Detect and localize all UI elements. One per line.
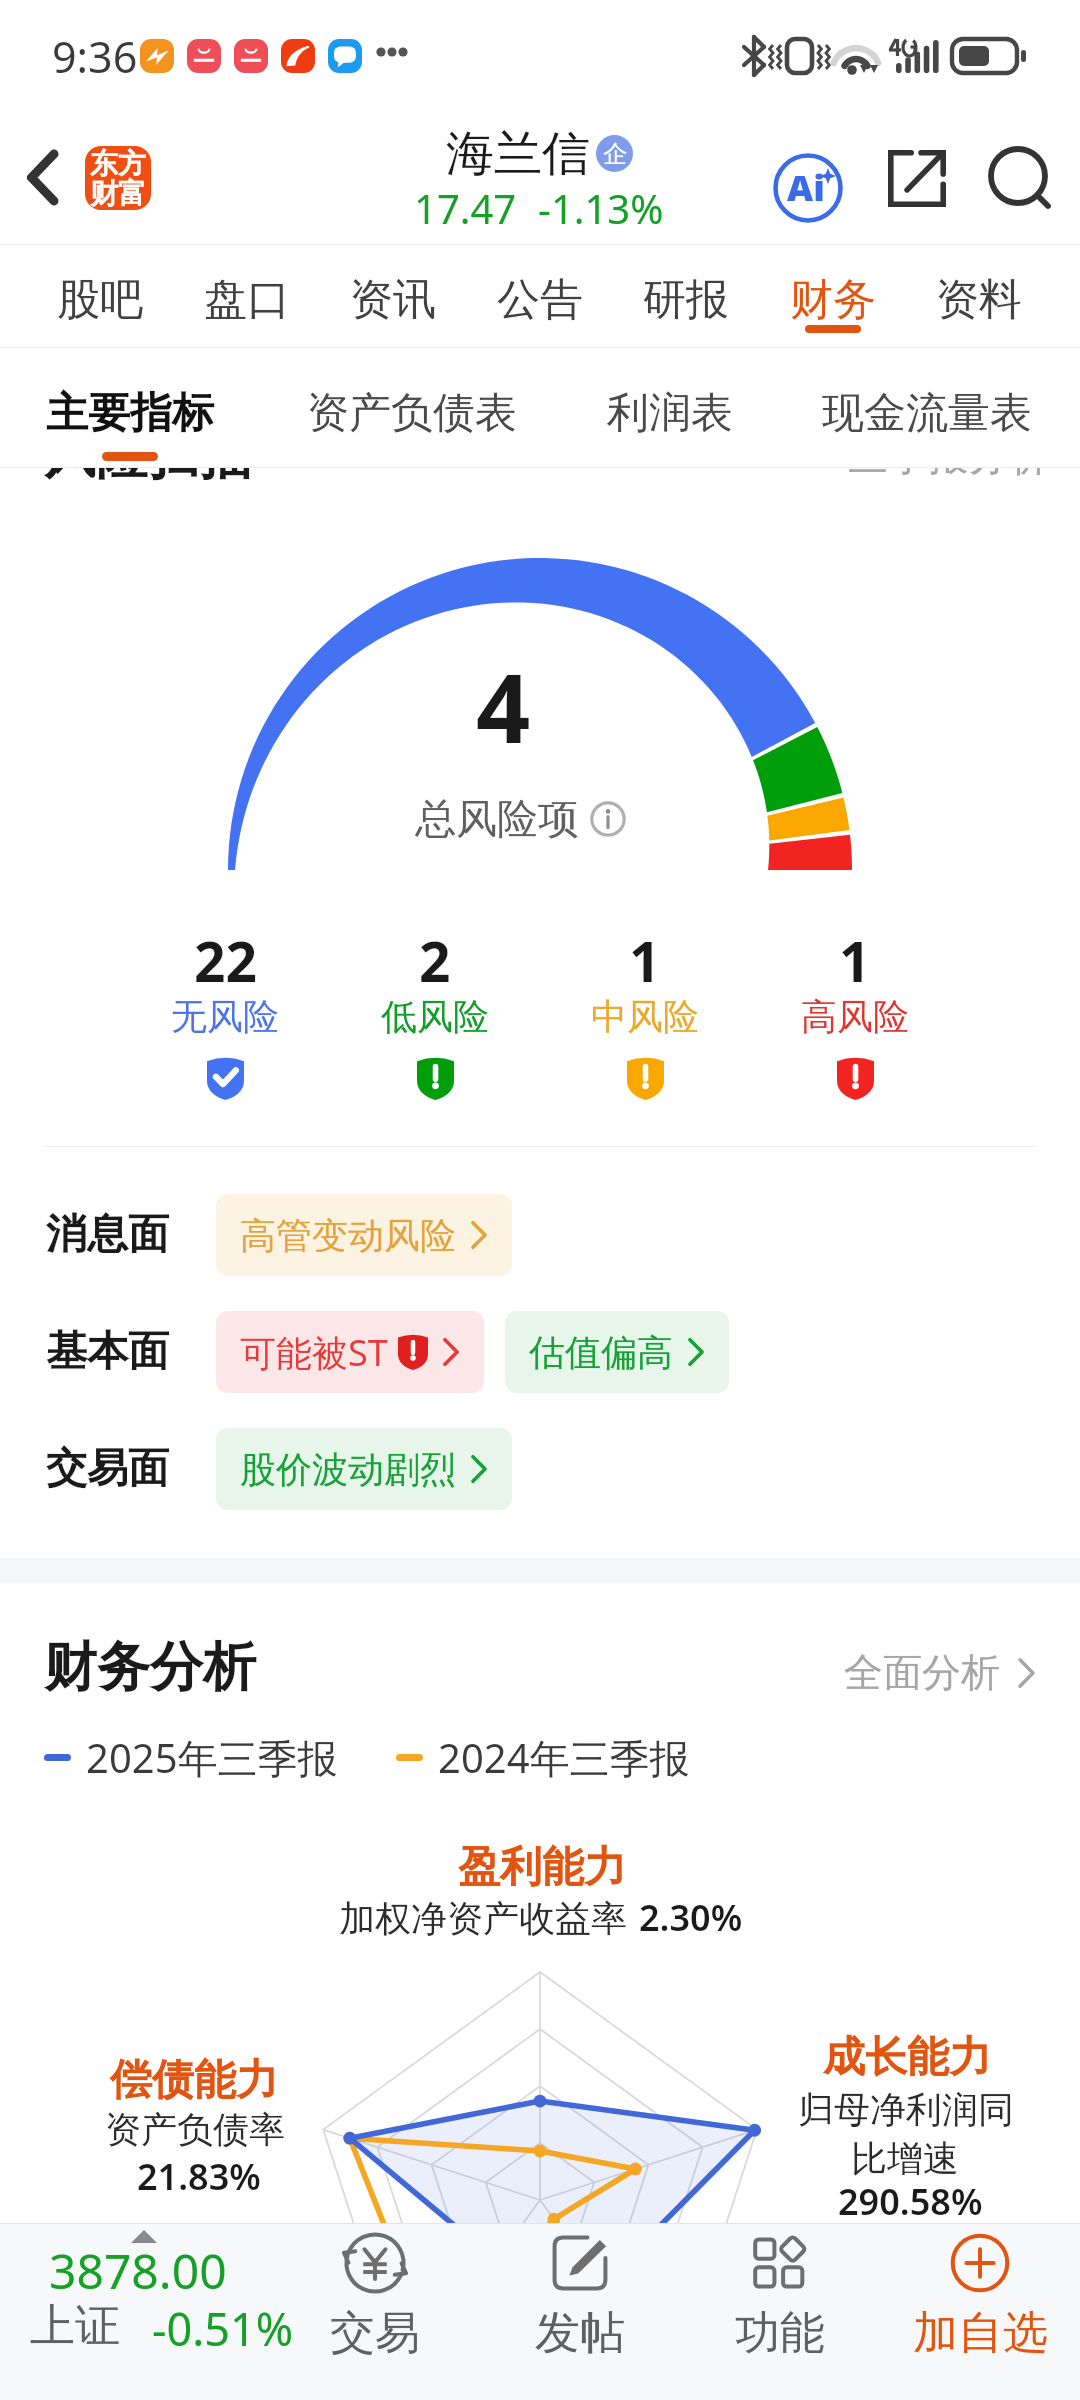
button[interactable]: 东方 财富 <box>85 146 151 210</box>
staticText: 三季报分析 <box>848 468 1048 481</box>
staticText: 基本面 <box>46 1326 169 1378</box>
button[interactable]: 资产负债表 <box>252 348 572 468</box>
staticText: 资产负债率 <box>105 2107 285 2152</box>
button[interactable]: 估值偏高 <box>505 1311 729 1393</box>
button[interactable]: 可能被ST <box>216 1311 484 1393</box>
staticText: 资讯 <box>350 273 436 327</box>
staticText: 归母净利润同 <box>798 2087 1014 2132</box>
button[interactable]: 股价波动剧烈 <box>216 1428 512 1510</box>
staticText: 估值偏高 <box>529 1330 673 1375</box>
staticText: 交易面 <box>46 1443 169 1495</box>
staticText: 2025年三季报 <box>86 1730 338 1785</box>
staticText: 企 <box>603 139 627 169</box>
staticText: 中风险 <box>591 994 699 1039</box>
staticText: 可能被ST <box>240 1328 388 1377</box>
staticText: 股价波动剧烈 <box>240 1447 456 1492</box>
staticText: 低风险 <box>381 994 489 1039</box>
staticText: 高管变动风险 <box>240 1213 456 1258</box>
staticText: 成长能力 <box>823 2031 991 2084</box>
button[interactable]: AI assistant <box>763 143 853 233</box>
staticText: 偿债能力 <box>110 2054 278 2107</box>
staticText: 2 <box>419 923 451 998</box>
button[interactable]: 全面分析 <box>844 1648 1035 1697</box>
button[interactable]: 主要指标 <box>0 348 290 468</box>
staticText: 2024年三季报 <box>438 1730 690 1785</box>
staticText: 现金流量表 <box>822 387 1032 440</box>
staticText: -1.13% <box>538 181 664 235</box>
staticText: 3878.00 <box>49 2238 227 2303</box>
staticText: 风险扫描 <box>44 468 252 489</box>
staticText: 公告 <box>497 273 583 327</box>
staticText: 交易 <box>330 2305 420 2362</box>
staticText: 资产负债表 <box>307 387 517 440</box>
staticText: 消息面 <box>46 1209 169 1261</box>
staticText: 盘口 <box>204 273 290 327</box>
staticText: Ai <box>787 163 825 212</box>
staticText: 比增速 <box>851 2136 959 2181</box>
staticText: 功能 <box>735 2305 825 2362</box>
button[interactable]: 发帖 <box>470 2223 690 2400</box>
staticText: 研报 <box>643 273 729 327</box>
button[interactable]: 高管变动风险 <box>216 1194 512 1276</box>
button[interactable]: Back <box>0 134 86 220</box>
button[interactable]: 股吧 <box>27 245 173 348</box>
staticText: 9:36 <box>52 27 138 86</box>
staticText: 全面分析 <box>844 1648 1000 1697</box>
staticText: 海兰信 <box>446 124 590 184</box>
staticText: 上证 <box>30 2298 120 2355</box>
button[interactable]: 财务 <box>760 245 906 348</box>
button[interactable]: 加自选 <box>870 2223 1080 2400</box>
staticText: 22 <box>194 923 257 998</box>
staticText: 21.83% <box>137 2152 261 2201</box>
button[interactable]: Share <box>888 150 946 207</box>
staticText: 290.58% <box>838 2177 983 2223</box>
button[interactable]: 利润表 <box>510 348 830 468</box>
staticText: 高风险 <box>801 994 909 1039</box>
button[interactable]: 资讯 <box>320 245 466 348</box>
staticText: 资料 <box>936 273 1022 327</box>
staticText: 4 <box>476 641 531 770</box>
button[interactable]: 公告 <box>467 245 613 348</box>
staticText: 1 <box>839 923 871 998</box>
button[interactable]: 交易 <box>265 2223 485 2400</box>
staticText: 2.30% <box>639 1893 743 1942</box>
button[interactable]: 盘口 <box>174 245 320 348</box>
staticText: 东方 财富 <box>90 146 146 210</box>
staticText: 发帖 <box>535 2305 625 2362</box>
staticText: 股吧 <box>57 273 143 327</box>
staticText: 加权净资产收益率 <box>339 1896 627 1941</box>
staticText: 无风险 <box>171 994 279 1039</box>
button[interactable]: 资料 <box>906 245 1052 348</box>
staticText: 加自选 <box>913 2305 1048 2362</box>
staticText: 1 <box>629 923 661 998</box>
staticText: 总风险项 <box>415 794 579 846</box>
button[interactable]: 功能 <box>670 2223 890 2400</box>
button[interactable]: 3878.00 <box>0 2224 300 2400</box>
button[interactable]: 研报 <box>613 245 759 348</box>
staticText: 利润表 <box>607 387 733 440</box>
staticText: 盈利能力 <box>458 1841 626 1894</box>
staticText: 财务 <box>790 273 876 327</box>
staticText: -0.51% <box>152 2298 294 2359</box>
staticText: 17.47 <box>414 181 517 235</box>
staticText: 财务分析 <box>44 1634 256 1701</box>
staticText: 主要指标 <box>46 387 214 440</box>
button[interactable]: 现金流量表 <box>767 348 1080 468</box>
button[interactable]: Search <box>990 146 1052 208</box>
